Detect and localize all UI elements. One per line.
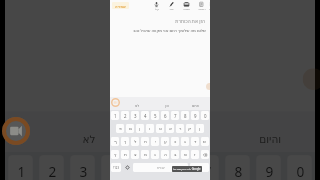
staticText: צ bbox=[134, 152, 137, 157]
staticText: וכן bbox=[165, 104, 169, 108]
button[interactable]: ח bbox=[141, 137, 149, 150]
button[interactable]: Floating shortcut bbox=[303, 68, 320, 90]
staticText: ל bbox=[134, 139, 137, 144]
button[interactable]: צ bbox=[131, 150, 139, 163]
staticText: כ bbox=[174, 139, 177, 144]
button[interactable] bbox=[201, 150, 209, 163]
button[interactable]: 4 bbox=[101, 155, 126, 180]
button[interactable]: פ bbox=[116, 124, 124, 137]
button[interactable]: מ bbox=[141, 150, 149, 163]
button[interactable]: וכן bbox=[152, 97, 181, 110]
button[interactable]: ת bbox=[121, 150, 129, 163]
button[interactable]: ק bbox=[186, 124, 194, 137]
staticText: 9 bbox=[265, 161, 275, 180]
button[interactable]: ↵ bbox=[190, 163, 209, 176]
button[interactable]: לא bbox=[45, 112, 135, 152]
button[interactable]: ן bbox=[136, 124, 144, 137]
button[interactable]: ו bbox=[146, 124, 154, 137]
button[interactable]: ך bbox=[121, 137, 129, 150]
button[interactable]: ש bbox=[201, 137, 209, 150]
button[interactable]: 2 bbox=[121, 111, 129, 124]
staticText: ?123 bbox=[113, 166, 120, 170]
staticText: ץ bbox=[114, 152, 117, 157]
staticText: ציור bbox=[169, 8, 174, 11]
button[interactable]: Draw bbox=[164, 0, 179, 12]
button[interactable]: 7 bbox=[171, 111, 179, 124]
button[interactable]: ?123 bbox=[111, 163, 121, 176]
staticText: 8 bbox=[184, 113, 187, 119]
button[interactable]: Record audio bbox=[149, 0, 164, 12]
staticText: ע bbox=[164, 139, 167, 144]
staticText: אפשרויות bbox=[209, 8, 210, 12]
staticText: קול bbox=[155, 8, 159, 11]
button[interactable]: 6 bbox=[161, 111, 169, 124]
button[interactable]: 2 bbox=[39, 155, 64, 180]
button[interactable]: 8 bbox=[225, 155, 250, 180]
button[interactable]: והיום bbox=[181, 97, 210, 110]
button[interactable]: ל bbox=[131, 137, 139, 150]
button[interactable]: ץ bbox=[111, 150, 119, 163]
staticText: 2 bbox=[124, 113, 127, 119]
button[interactable]: שמירה bbox=[112, 2, 129, 9]
button[interactable]: 7 bbox=[194, 155, 219, 180]
button[interactable]: 6 bbox=[163, 155, 188, 180]
button[interactable]: א bbox=[166, 124, 174, 137]
staticText: 1 bbox=[114, 113, 117, 119]
button[interactable]: 4 bbox=[141, 111, 149, 124]
staticText: 7 bbox=[174, 113, 177, 119]
button[interactable]: ס bbox=[181, 150, 189, 163]
staticText: 5 bbox=[154, 113, 157, 119]
staticText: תמונה bbox=[183, 8, 190, 11]
button[interactable]: 0 bbox=[201, 111, 209, 124]
staticText: ט bbox=[159, 126, 162, 131]
staticText: ד bbox=[194, 139, 197, 144]
button[interactable]: ג bbox=[181, 137, 189, 150]
button[interactable]: More options bbox=[209, 0, 210, 12]
staticText: והיום bbox=[259, 133, 284, 146]
button[interactable]: ע bbox=[161, 137, 169, 150]
button[interactable]: 5 bbox=[151, 111, 159, 124]
staticText: ח bbox=[144, 139, 147, 144]
button[interactable]: 1 bbox=[111, 111, 119, 124]
button[interactable]: וכן bbox=[135, 112, 225, 152]
button[interactable]: ז bbox=[191, 150, 199, 163]
button[interactable]: Checklist bbox=[194, 0, 209, 12]
button[interactable]: Floating shortcut bbox=[206, 83, 210, 90]
button[interactable]: י bbox=[151, 137, 159, 150]
staticText: וכן bbox=[175, 133, 188, 146]
button[interactable]: ה bbox=[161, 150, 169, 163]
button[interactable]: כ bbox=[171, 137, 179, 150]
staticText: רשימה bbox=[198, 8, 206, 11]
button[interactable]: עברית bbox=[133, 163, 188, 176]
button[interactable]: ף bbox=[111, 137, 119, 150]
staticText: 0 bbox=[296, 161, 306, 180]
button[interactable]: Add image bbox=[179, 0, 194, 12]
button[interactable]: 8 bbox=[181, 111, 189, 124]
button[interactable]: והיום bbox=[225, 112, 315, 152]
staticText: ה bbox=[164, 152, 167, 157]
button[interactable]: 9 bbox=[191, 111, 199, 124]
button[interactable]: ט bbox=[156, 124, 164, 137]
button[interactable]: ן bbox=[196, 124, 204, 137]
staticText: 7 bbox=[203, 161, 213, 180]
button[interactable]: ם bbox=[126, 124, 134, 137]
staticText: נ bbox=[154, 152, 156, 157]
button[interactable]: 5 bbox=[132, 155, 157, 180]
button[interactable]: 9 bbox=[256, 155, 281, 180]
button[interactable]: ד bbox=[191, 137, 199, 150]
staticText: ס bbox=[184, 152, 187, 157]
staticText: לוח המקשים של Google bbox=[173, 167, 201, 171]
button[interactable]: Keyboard settings bbox=[122, 163, 132, 176]
button[interactable]: נ bbox=[151, 150, 159, 163]
button[interactable]: ב bbox=[171, 150, 179, 163]
staticText: שמירה bbox=[115, 4, 126, 8]
staticText: ק bbox=[188, 126, 192, 131]
staticText: 0 bbox=[204, 113, 207, 119]
button[interactable]: 1 bbox=[8, 155, 33, 180]
button[interactable]: ר bbox=[176, 124, 184, 137]
button[interactable]: 3 bbox=[70, 155, 95, 180]
staticText: א bbox=[169, 126, 172, 131]
button[interactable]: 3 bbox=[131, 111, 139, 124]
button[interactable]: 0 bbox=[287, 155, 312, 180]
button[interactable]: לא bbox=[123, 97, 152, 110]
